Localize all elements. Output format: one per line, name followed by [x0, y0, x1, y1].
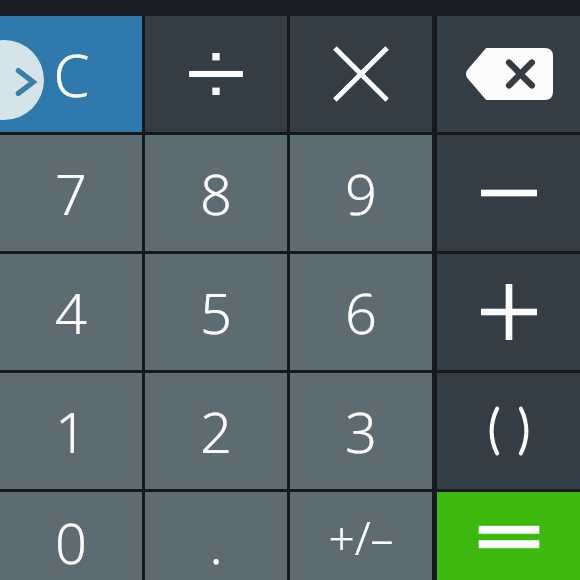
button[interactable]: Decimal point [145, 492, 287, 580]
staticText: 3 [345, 393, 377, 469]
button[interactable]: 8 [145, 135, 287, 251]
button[interactable]: 9 [290, 135, 432, 251]
staticText: 1 [55, 393, 87, 469]
button[interactable]: Backspace [437, 16, 580, 132]
button[interactable]: Equals [437, 492, 580, 580]
staticText: 0 [55, 504, 87, 580]
button[interactable]: 5 [145, 254, 287, 370]
button[interactable]: 3 [290, 373, 432, 489]
button[interactable]: Clear [0, 16, 142, 132]
button[interactable]: Multiply [290, 16, 432, 132]
button[interactable]: 4 [0, 254, 142, 370]
staticText: 2 [200, 393, 232, 469]
staticText: 7 [55, 155, 87, 231]
button[interactable]: Open drawer [0, 40, 44, 120]
button[interactable]: Plus or minus [290, 492, 432, 580]
button[interactable]: Minus [437, 135, 580, 251]
staticText: . [209, 504, 223, 580]
staticText: 6 [345, 274, 377, 350]
button[interactable]: 6 [290, 254, 432, 370]
button[interactable]: Plus [437, 254, 580, 370]
button[interactable]: 1 [0, 373, 142, 489]
button[interactable]: 2 [145, 373, 287, 489]
staticText: 8 [200, 155, 232, 231]
button[interactable]: Divide [145, 16, 287, 132]
staticText: +/– [328, 506, 394, 569]
staticText: 9 [345, 155, 377, 231]
button[interactable]: 0 [0, 492, 142, 580]
button[interactable]: 7 [0, 135, 142, 251]
button[interactable]: Parentheses [437, 373, 580, 489]
staticText: 4 [55, 274, 87, 350]
staticText: C [53, 35, 90, 114]
staticText: 5 [200, 274, 232, 350]
